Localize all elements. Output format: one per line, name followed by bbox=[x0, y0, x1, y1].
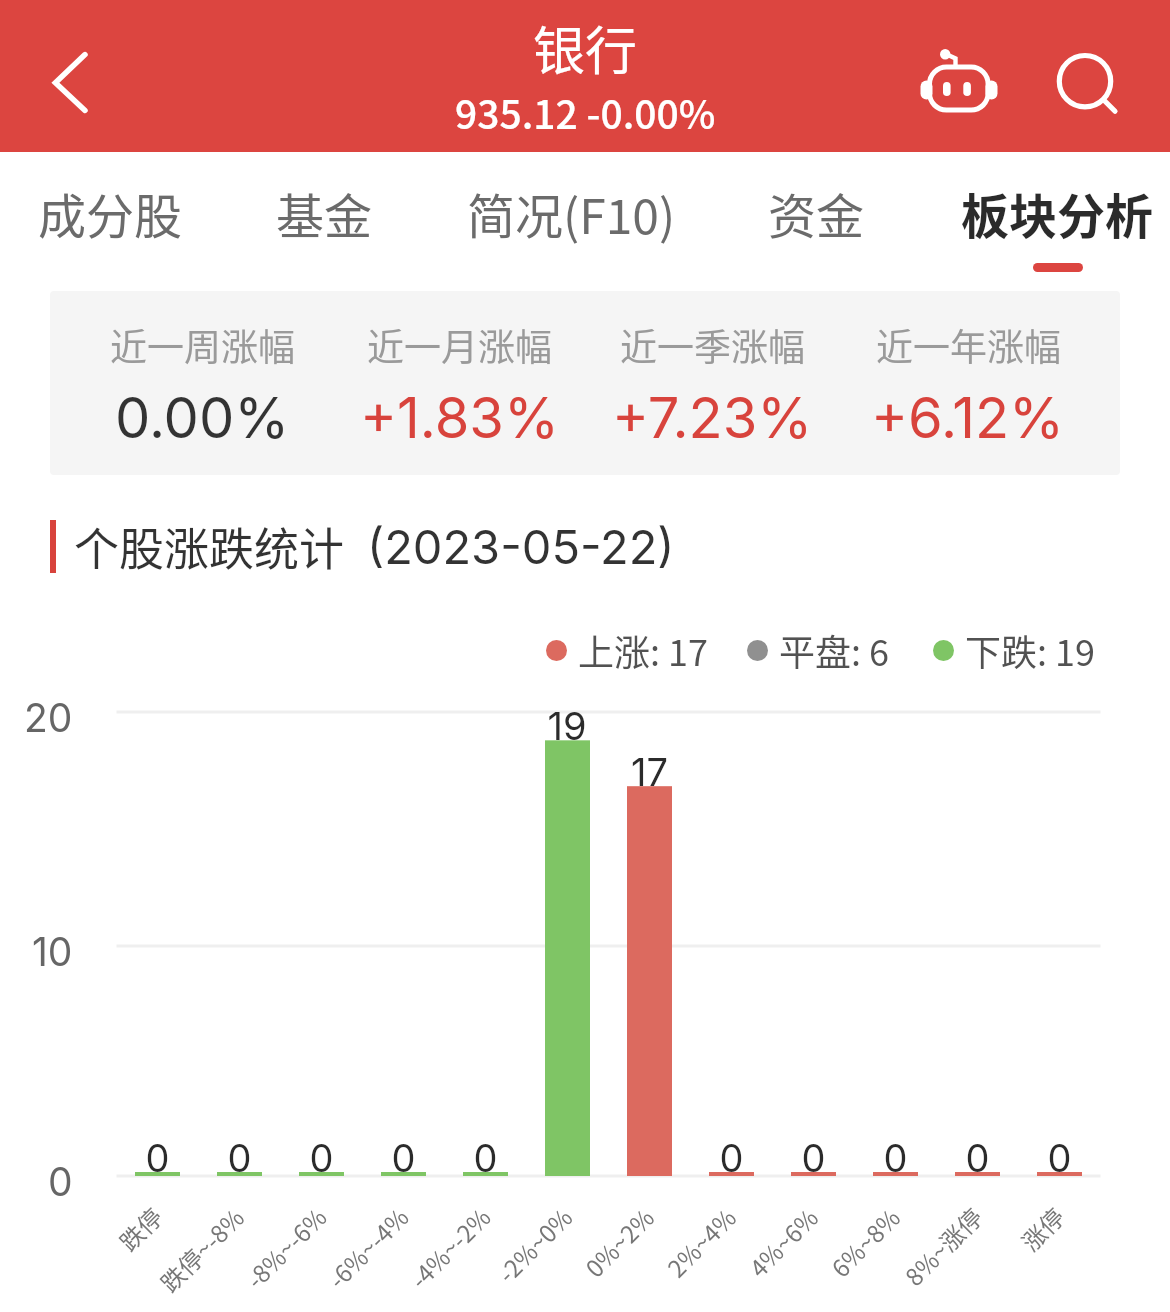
staticText: 近一月涨幅 bbox=[367, 318, 552, 372]
staticText: 下跌: 19 bbox=[965, 624, 1096, 676]
button[interactable]: 资金 bbox=[706, 152, 926, 291]
staticText: 近一周涨幅 bbox=[110, 318, 295, 372]
staticText: 平盘: 6 bbox=[779, 624, 890, 676]
staticText: 935.12 -0.00% bbox=[455, 84, 716, 140]
button[interactable]: 基金 bbox=[214, 152, 434, 291]
staticText: 简况(F10) bbox=[467, 178, 676, 248]
staticText: 近一季涨幅 bbox=[620, 318, 805, 372]
button[interactable]: 下跌: 19 bbox=[933, 624, 1096, 676]
staticText: 板块分析 bbox=[961, 178, 1154, 248]
button[interactable]: AI assistant bbox=[911, 33, 1003, 125]
button[interactable]: Search bbox=[1039, 35, 1131, 127]
button[interactable]: Back bbox=[20, 38, 102, 120]
staticText: (2023-05-22) bbox=[367, 518, 675, 575]
staticText: 上涨: 17 bbox=[578, 624, 709, 676]
staticText: 银行 bbox=[533, 10, 638, 85]
button[interactable]: 上涨: 17 bbox=[546, 624, 709, 676]
staticText: +7.23% bbox=[612, 384, 813, 452]
staticText: +1.83% bbox=[360, 384, 559, 452]
button[interactable]: 板块分析 bbox=[947, 152, 1167, 291]
staticText: 近一年涨幅 bbox=[876, 318, 1061, 372]
button[interactable]: 简况(F10) bbox=[461, 152, 681, 291]
staticText: 成分股 bbox=[38, 178, 183, 248]
staticText: 0.00% bbox=[115, 384, 290, 452]
staticText: 资金 bbox=[768, 178, 865, 248]
button[interactable]: 成分股 bbox=[0, 152, 220, 291]
staticText: 基金 bbox=[276, 178, 373, 248]
button[interactable]: 平盘: 6 bbox=[747, 624, 890, 676]
staticText: +6.12% bbox=[871, 384, 1065, 452]
staticText: 个股涨跌统计 bbox=[74, 514, 345, 579]
